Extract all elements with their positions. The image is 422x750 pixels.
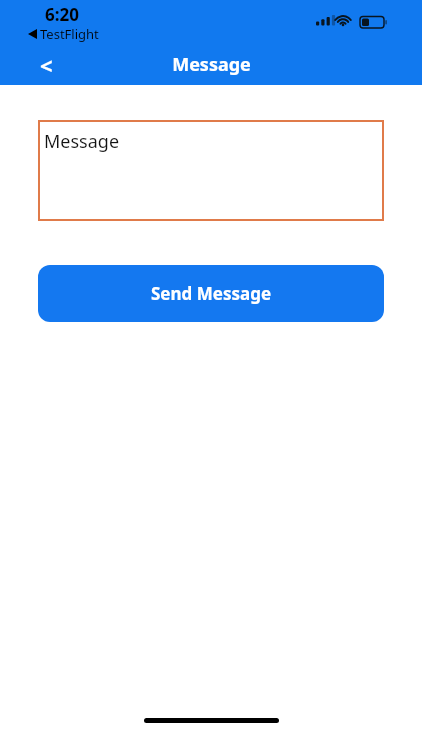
staticText: Send Message (151, 282, 272, 305)
staticText: < (40, 50, 53, 80)
button[interactable]: Back to TestFlight (28, 25, 99, 43)
staticText: TestFlight (40, 25, 99, 43)
button[interactable]: Back (28, 47, 64, 83)
button[interactable]: Send Message (38, 265, 384, 322)
staticText: Message (172, 52, 251, 77)
button[interactable]: Message (38, 120, 384, 221)
staticText: Message (44, 129, 120, 154)
staticText: 6:20 (45, 3, 79, 26)
